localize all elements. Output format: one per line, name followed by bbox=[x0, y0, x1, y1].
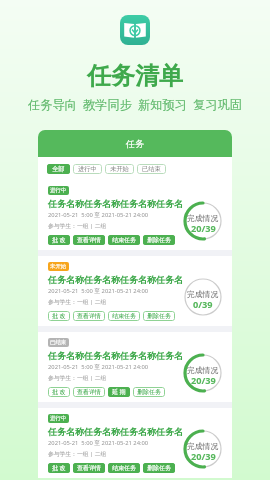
staticText: 已结束 bbox=[50, 339, 67, 346]
button[interactable]: 全部 bbox=[47, 164, 70, 174]
staticText: 结束任务 bbox=[112, 312, 136, 320]
staticText: 结束任务 bbox=[112, 464, 136, 472]
staticText: 完成情况 bbox=[187, 365, 219, 375]
staticText: 批 改 bbox=[52, 312, 66, 320]
staticText: 已结束 bbox=[142, 165, 161, 173]
staticText: 进行中 bbox=[78, 165, 97, 173]
staticText: 完成情况 bbox=[187, 441, 219, 451]
button[interactable]: 批 改 bbox=[48, 463, 70, 473]
staticText: 完成情况 bbox=[187, 289, 219, 299]
staticText: 进行中 bbox=[50, 187, 67, 194]
button[interactable]: 未开始 bbox=[105, 164, 134, 174]
button[interactable]: 删除任务 bbox=[143, 463, 175, 473]
staticText: 未开始 bbox=[110, 165, 129, 173]
button[interactable]: 批 改 bbox=[48, 311, 70, 321]
staticText: 参与学生：一组 | 二组 bbox=[48, 222, 107, 230]
button[interactable]: 查看详情 bbox=[73, 235, 105, 245]
staticText: 结束任务 bbox=[112, 236, 136, 244]
staticText: 批 改 bbox=[52, 464, 66, 472]
staticText: 完成情况 bbox=[187, 213, 219, 223]
staticText: 批 改 bbox=[52, 388, 66, 396]
staticText: 任务名称任务名称任务名称任务名 bbox=[48, 274, 183, 285]
staticText: 任务名称任务名称任务名称任务名 bbox=[48, 198, 183, 209]
staticText: 查看详情 bbox=[77, 388, 101, 396]
staticText: 全部 bbox=[52, 165, 65, 173]
button[interactable]: 已结束 bbox=[137, 164, 166, 174]
staticText: 20/39 bbox=[191, 450, 216, 463]
staticText: 删除任务 bbox=[147, 236, 171, 244]
staticText: 20/39 bbox=[191, 374, 216, 387]
button[interactable]: 删除任务 bbox=[133, 387, 165, 397]
staticText: 2021-05-21 5:00 至 2021-05-21 24:00 bbox=[48, 211, 149, 219]
staticText: 查看详情 bbox=[77, 236, 101, 244]
staticText: 任务名称任务名称任务名称任务名 bbox=[48, 350, 183, 361]
staticText: 参与学生：一组 | 二组 bbox=[48, 298, 107, 306]
button[interactable]: 进行中 bbox=[38, 180, 232, 250]
staticText: 任务导向 教学同步 新知预习 复习巩固 bbox=[28, 96, 243, 113]
staticText: 任务 bbox=[126, 138, 144, 149]
staticText: 0/39 bbox=[193, 298, 213, 311]
staticText: 参与学生：一组 | 二组 bbox=[48, 374, 107, 382]
button[interactable]: 查看详情 bbox=[73, 463, 105, 473]
staticText: 删除任务 bbox=[147, 464, 171, 472]
button[interactable]: 未开始 bbox=[38, 256, 232, 326]
staticText: 任务名称任务名称任务名称任务名 bbox=[48, 426, 183, 437]
button[interactable]: 进行中 bbox=[73, 164, 102, 174]
button[interactable]: 延 期 bbox=[108, 387, 130, 397]
button[interactable]: 进行中 bbox=[38, 408, 232, 478]
staticText: 任务清单 bbox=[87, 61, 183, 91]
button[interactable]: 结束任务 bbox=[108, 311, 140, 321]
button[interactable]: 查看详情 bbox=[73, 387, 105, 397]
staticText: 20/39 bbox=[191, 222, 216, 235]
staticText: 延 期 bbox=[112, 388, 126, 396]
staticText: 参与学生：一组 | 二组 bbox=[48, 450, 107, 458]
button[interactable]: 批 改 bbox=[48, 387, 70, 397]
staticText: 查看详情 bbox=[77, 312, 101, 320]
button[interactable]: 查看详情 bbox=[73, 311, 105, 321]
button[interactable]: 删除任务 bbox=[143, 311, 175, 321]
staticText: 删除任务 bbox=[147, 312, 171, 320]
staticText: 2021-05-21 5:00 至 2021-05-21 24:00 bbox=[48, 363, 149, 371]
button[interactable]: 删除任务 bbox=[143, 235, 175, 245]
button[interactable]: 结束任务 bbox=[108, 463, 140, 473]
staticText: 2021-05-21 5:00 至 2021-05-21 24:00 bbox=[48, 439, 149, 447]
staticText: 进行中 bbox=[50, 415, 67, 422]
staticText: 删除任务 bbox=[137, 388, 161, 396]
staticText: 未开始 bbox=[50, 263, 67, 270]
button[interactable]: 结束任务 bbox=[108, 235, 140, 245]
staticText: 2021-05-21 5:00 至 2021-05-21 24:00 bbox=[48, 287, 149, 295]
button[interactable]: 已结束 bbox=[38, 332, 232, 402]
button[interactable]: 批 改 bbox=[48, 235, 70, 245]
staticText: 查看详情 bbox=[77, 464, 101, 472]
staticText: 批 改 bbox=[52, 236, 66, 244]
